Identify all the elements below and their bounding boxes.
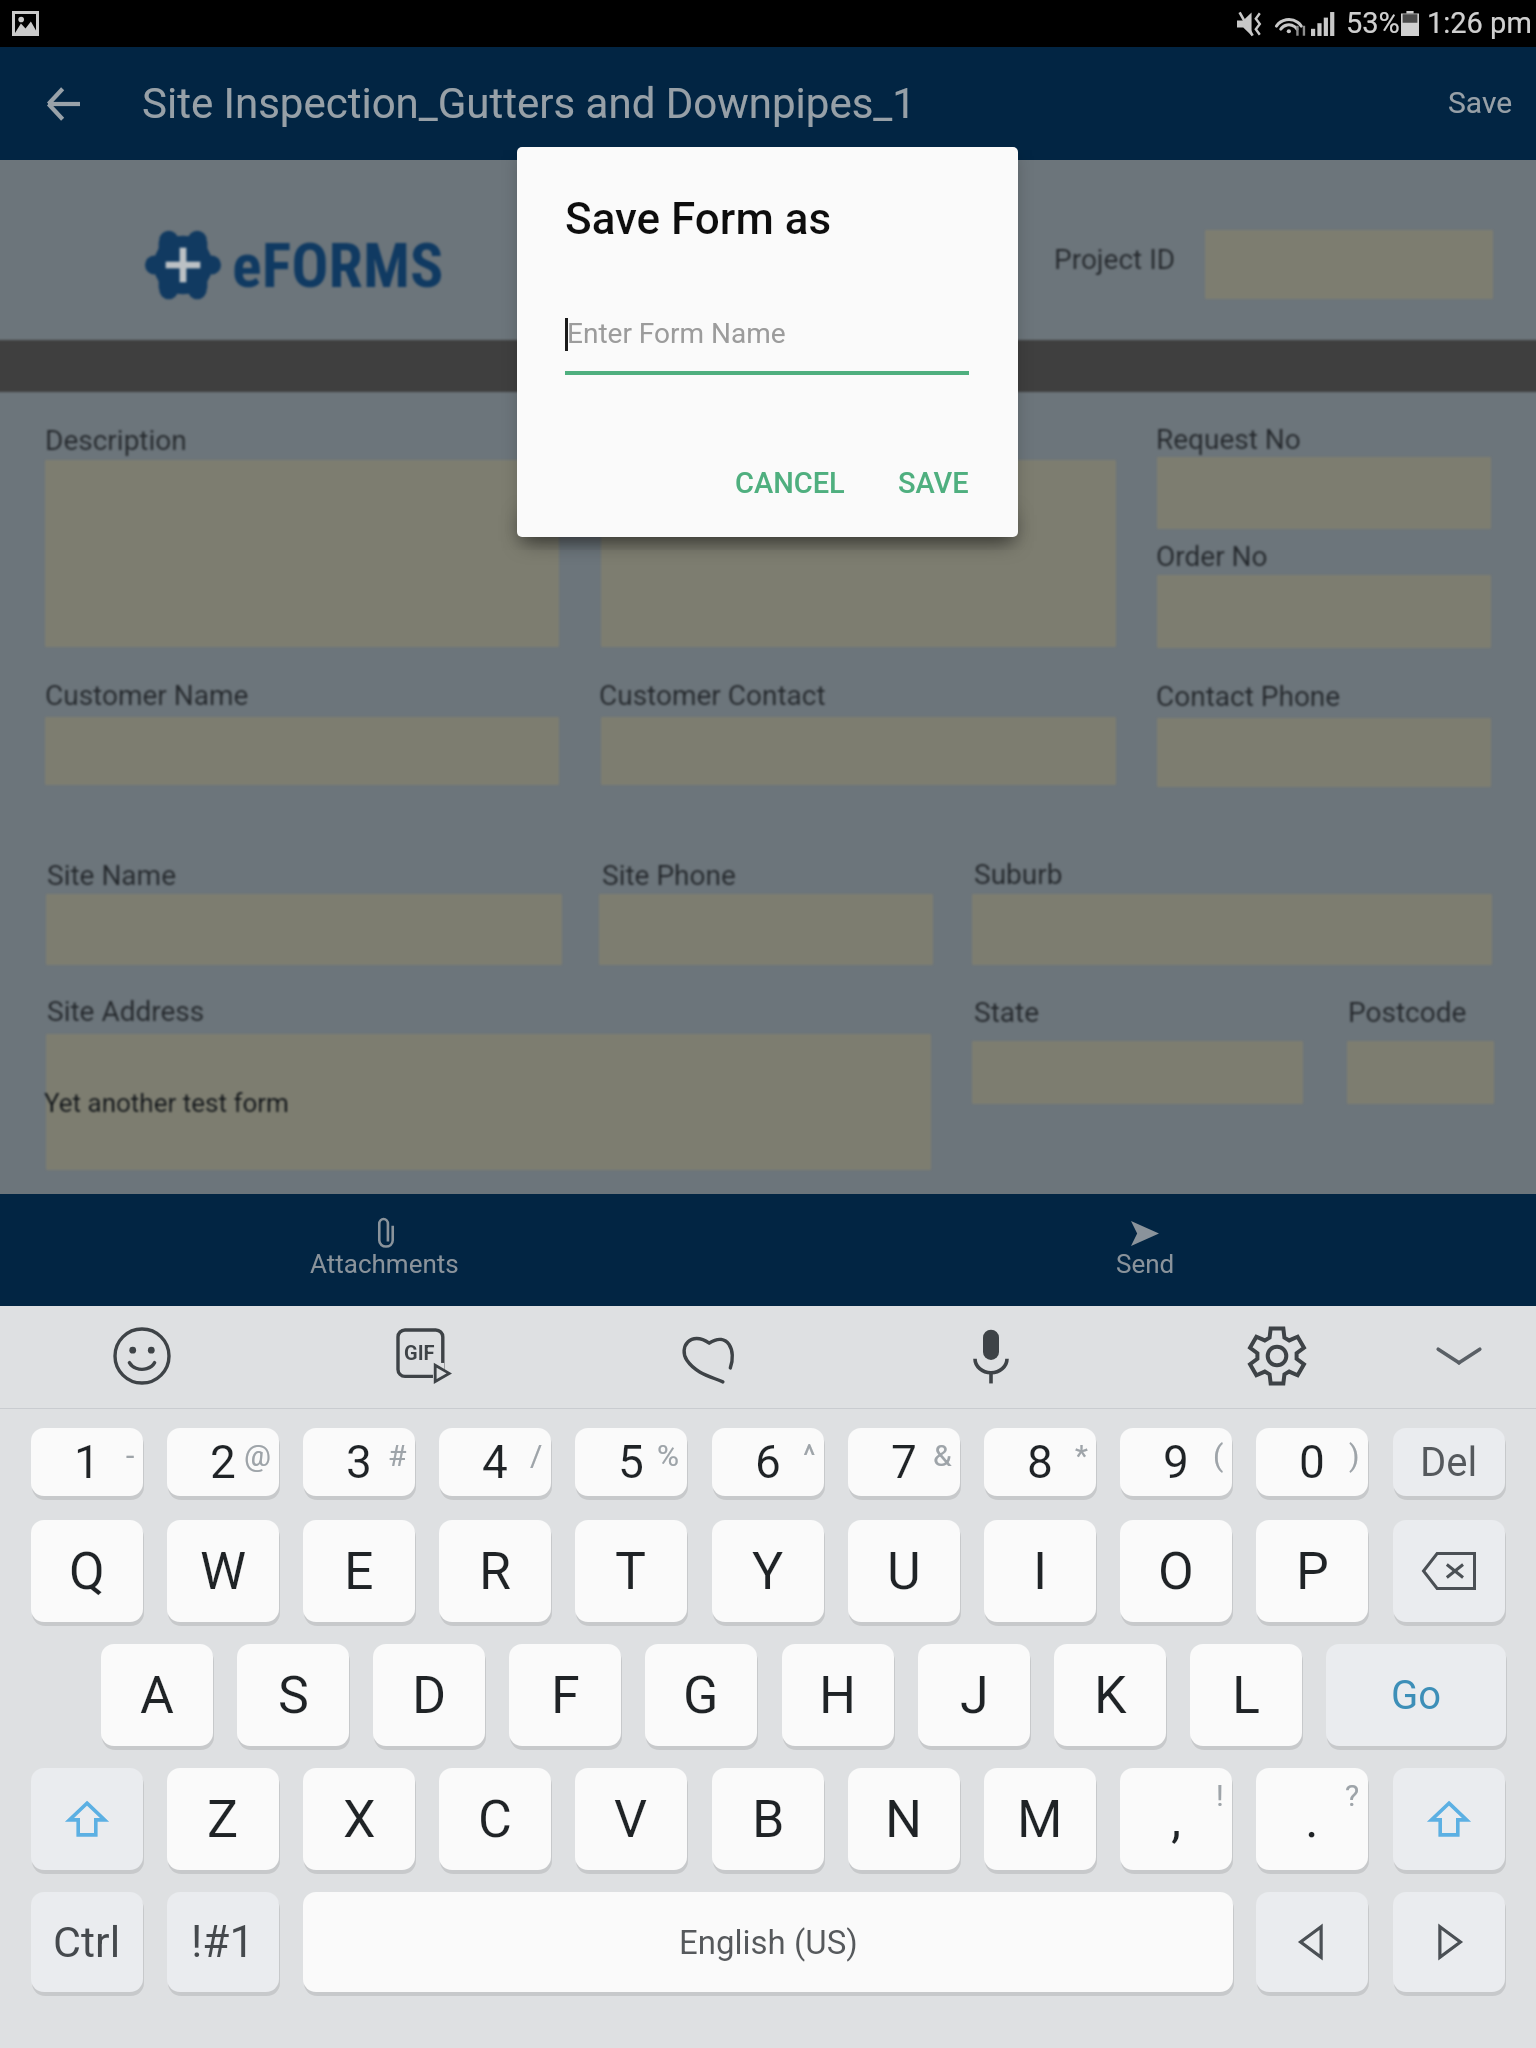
button[interactable]: Move cursor left [1256, 1892, 1368, 1992]
staticText: SAVE [898, 466, 969, 500]
staticText: O [1158, 1541, 1194, 1602]
button[interactable]: U [848, 1520, 960, 1622]
button[interactable]: Keyboard settings [1207, 1305, 1347, 1407]
staticText: & [933, 1438, 952, 1473]
button[interactable]: P [1256, 1520, 1368, 1622]
staticText: Yet another test form [44, 1088, 289, 1118]
button[interactable]: M [984, 1768, 1096, 1870]
staticText: Site Inspection_Gutters and Downpipes_1 [142, 79, 916, 128]
staticText: F [551, 1665, 580, 1726]
staticText: Go [1391, 1672, 1442, 1719]
button[interactable]: B [712, 1768, 824, 1870]
button[interactable]: , [1120, 1768, 1232, 1870]
button[interactable]: S [237, 1644, 349, 1746]
staticText: K [1094, 1665, 1127, 1726]
button[interactable]: 8 [984, 1428, 1096, 1496]
button[interactable]: GIF [354, 1305, 494, 1407]
staticText: ^ [803, 1438, 816, 1473]
button[interactable]: Emoji [72, 1305, 212, 1407]
button[interactable]: E [303, 1520, 415, 1622]
button[interactable]: Send [768, 1194, 1536, 1306]
button[interactable]: Attachments [0, 1194, 768, 1306]
button[interactable]: L [1190, 1644, 1302, 1746]
button[interactable]: 2 [167, 1428, 279, 1496]
button[interactable]: 0 [1256, 1428, 1368, 1496]
button[interactable]: Del [1393, 1428, 1505, 1496]
button[interactable]: O [1120, 1520, 1232, 1622]
button[interactable]: 9 [1120, 1428, 1232, 1496]
staticText: @ [244, 1438, 271, 1473]
button[interactable]: Voice input [921, 1305, 1061, 1407]
staticText: 6 [755, 1435, 781, 1489]
staticText: 8 [1027, 1435, 1053, 1489]
button[interactable]: 6 [712, 1428, 824, 1496]
button[interactable]: Y [712, 1520, 824, 1622]
button[interactable]: 1 [31, 1428, 143, 1496]
button[interactable]: Back [20, 60, 108, 148]
staticText: E [344, 1541, 374, 1602]
button[interactable]: 3 [303, 1428, 415, 1496]
button[interactable]: Shift [1393, 1768, 1505, 1870]
button[interactable]: 4 [439, 1428, 551, 1496]
button[interactable]: Z [167, 1768, 279, 1870]
button[interactable]: English (US) [303, 1892, 1233, 1992]
button[interactable]: V [575, 1768, 687, 1870]
button[interactable]: A [101, 1644, 213, 1746]
button[interactable]: T [575, 1520, 687, 1622]
button[interactable]: H [782, 1644, 894, 1746]
button[interactable]: 7 [848, 1428, 960, 1496]
staticText: 0 [1299, 1435, 1325, 1489]
staticText: 53% [1346, 6, 1400, 40]
button[interactable]: Stickers [638, 1305, 778, 1407]
button[interactable]: K [1054, 1644, 1166, 1746]
staticText: R [479, 1541, 512, 1602]
staticText: State [974, 996, 1040, 1029]
button[interactable]: Backspace [1393, 1520, 1505, 1622]
button[interactable]: Ctrl [31, 1892, 143, 1992]
button[interactable]: Go [1326, 1644, 1506, 1746]
button[interactable]: F [509, 1644, 621, 1746]
staticText: Del [1420, 1439, 1478, 1486]
button[interactable]: N [848, 1768, 960, 1870]
button[interactable]: I [984, 1520, 1096, 1622]
button[interactable]: X [303, 1768, 415, 1870]
staticText: # [388, 1438, 407, 1473]
staticText: 2 [210, 1435, 236, 1489]
staticText: English (US) [679, 1923, 858, 1962]
staticText: 1 [74, 1435, 100, 1489]
staticText: U [887, 1541, 921, 1602]
staticText: * [1075, 1438, 1088, 1473]
button[interactable]: Hide keyboard [1389, 1305, 1529, 1407]
staticText: M [1017, 1789, 1063, 1850]
button[interactable]: . [1256, 1768, 1368, 1870]
staticText: Project ID [1054, 243, 1176, 276]
button[interactable]: CANCEL [720, 451, 860, 515]
staticText: Postcode [1348, 996, 1467, 1029]
button[interactable]: D [373, 1644, 485, 1746]
staticText: GIF [404, 1341, 435, 1364]
staticText: H [819, 1665, 857, 1726]
button[interactable]: G [645, 1644, 757, 1746]
staticText: Save Form as [565, 193, 832, 245]
button[interactable]: C [439, 1768, 551, 1870]
button[interactable]: Q [31, 1520, 143, 1622]
staticText: 4 [482, 1435, 508, 1489]
staticText: Z [207, 1789, 239, 1850]
staticText: Attachments [310, 1249, 459, 1279]
staticText: Customer Contact [599, 679, 826, 712]
button[interactable]: J [918, 1644, 1030, 1746]
staticText: 3 [346, 1435, 372, 1489]
staticText: 7 [891, 1435, 917, 1489]
button[interactable]: SAVE [882, 451, 984, 515]
button[interactable]: W [167, 1520, 279, 1622]
staticText: L [1232, 1665, 1261, 1726]
button[interactable]: R [439, 1520, 551, 1622]
button[interactable]: Shift [31, 1768, 143, 1870]
staticText: / [530, 1438, 543, 1473]
button[interactable]: !#1 [167, 1892, 279, 1992]
button[interactable]: Save [1430, 56, 1530, 152]
staticText: Request No [1156, 423, 1301, 456]
button[interactable]: Move cursor right [1393, 1892, 1505, 1992]
staticText: eFORMS [232, 229, 444, 302]
button[interactable]: 5 [575, 1428, 687, 1496]
